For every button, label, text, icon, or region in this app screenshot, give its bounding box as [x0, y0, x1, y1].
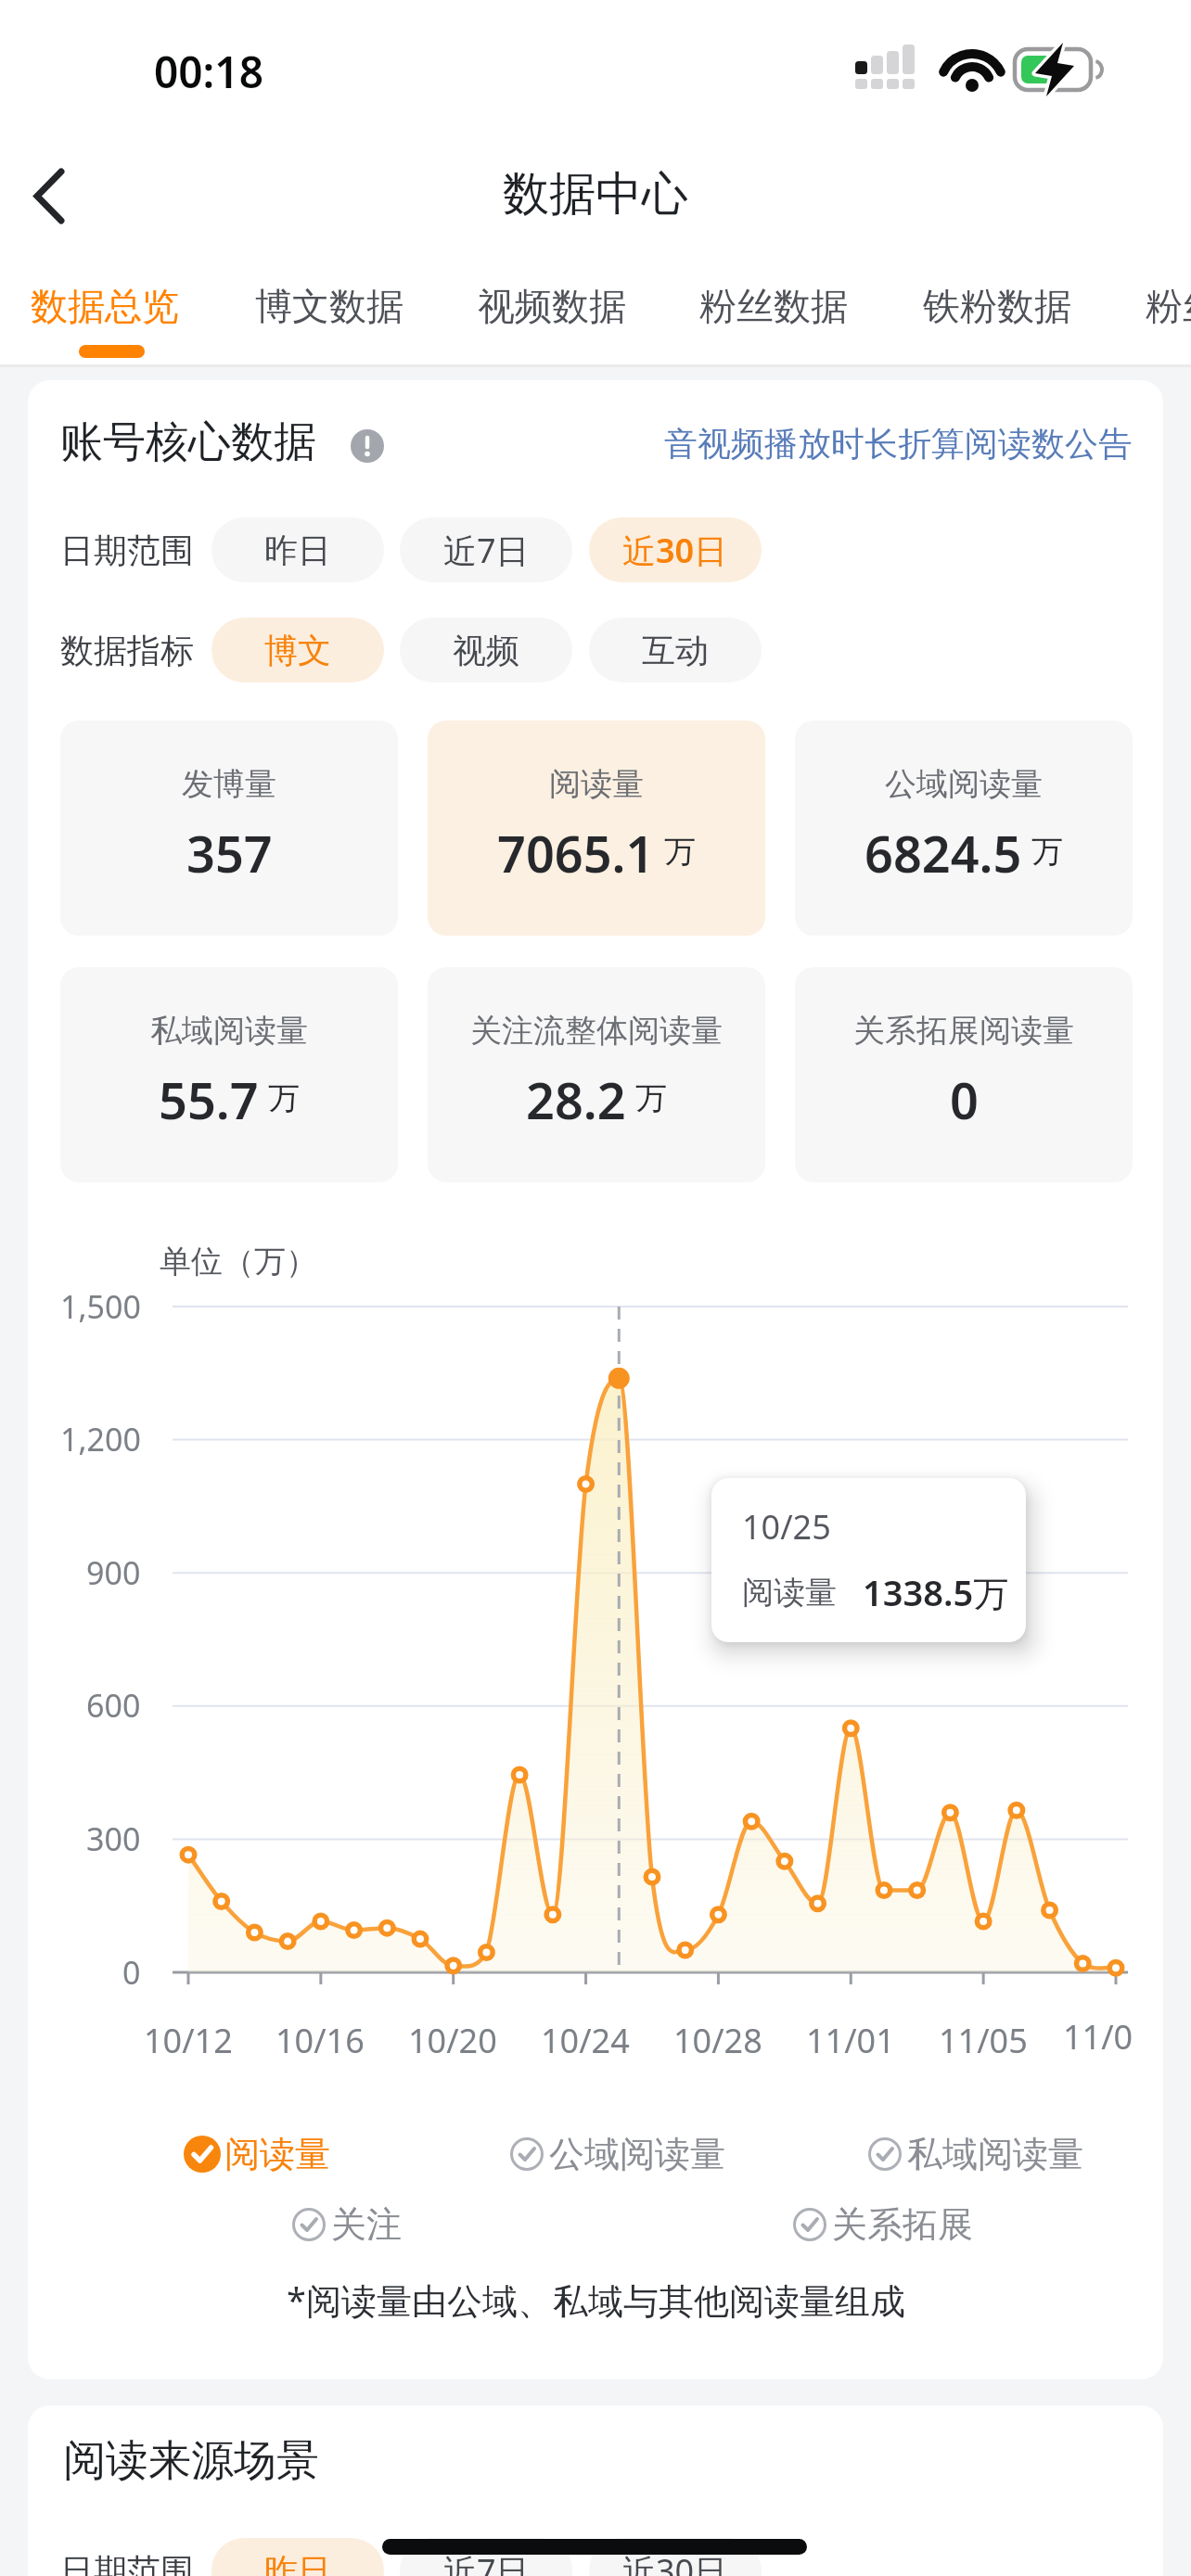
staticText: 10/24: [541, 2018, 630, 2063]
staticText: 1,500: [60, 1285, 141, 1328]
staticText: 10/28: [673, 2018, 762, 2063]
button[interactable]: 发博量: [60, 721, 398, 936]
staticText: 7065.1: [497, 819, 655, 884]
staticText: 357: [186, 819, 273, 884]
button[interactable]: 关注: [288, 2197, 402, 2252]
button[interactable]: 私域阅读量: [864, 2126, 1083, 2182]
staticText: 视频: [453, 630, 519, 671]
staticText: 数据总览: [31, 283, 179, 329]
staticText: 互动: [642, 630, 709, 671]
button[interactable]: 私域阅读量: [60, 967, 398, 1182]
staticText: 1,200: [60, 1418, 141, 1460]
staticText: 近30日: [622, 2548, 728, 2576]
staticText: 铁粉数据: [923, 283, 1071, 329]
button[interactable]: 关注流整体阅读量: [428, 967, 765, 1182]
staticText: 阅读量: [742, 1573, 837, 1613]
button[interactable]: 关系拓展: [789, 2197, 973, 2252]
staticText: 0: [122, 1951, 141, 1994]
staticText: 0: [950, 1065, 979, 1130]
staticText: 关系拓展阅读量: [853, 1011, 1074, 1051]
staticText: 关系拓展: [832, 2202, 973, 2247]
button[interactable]: 近7日: [400, 2538, 572, 2576]
button[interactable]: 阅读量: [182, 2126, 330, 2182]
button[interactable]: 博文: [211, 618, 384, 682]
button[interactable]: 粉丝数据: [699, 267, 848, 345]
button[interactable]: 近7日: [400, 517, 572, 582]
staticText: 日期范围: [60, 2550, 194, 2576]
button[interactable]: 近30日: [589, 2538, 762, 2576]
staticText: 28.2: [526, 1065, 626, 1130]
staticText: 900: [86, 1551, 141, 1594]
staticText: 万: [664, 832, 696, 872]
staticText: 公域阅读量: [885, 764, 1043, 804]
staticText: 1338.5万: [863, 1568, 1009, 1616]
button[interactable]: 阅读量: [428, 721, 765, 936]
staticText: 近30日: [622, 528, 728, 573]
staticText: 600: [86, 1684, 141, 1727]
staticText: 万: [1031, 832, 1063, 872]
staticText: 博文: [264, 630, 331, 671]
button[interactable]: 公域阅读量: [795, 721, 1133, 936]
staticText: 300: [86, 1817, 141, 1860]
staticText: 阅读量: [224, 2132, 330, 2176]
staticText: 昨日: [264, 2550, 331, 2576]
button[interactable]: 公域阅读量: [506, 2126, 725, 2182]
staticText: 阅读量: [549, 764, 644, 804]
staticText: 博文数据: [255, 283, 403, 329]
button[interactable]: 粉丝数据: [1146, 267, 1191, 345]
staticText: 10/25: [742, 1504, 831, 1549]
staticText: 6824.5: [864, 819, 1022, 884]
staticText: 近7日: [443, 2548, 530, 2576]
button[interactable]: 互动: [589, 618, 762, 682]
staticText: 阅读来源场景: [63, 2434, 319, 2488]
staticText: 日期范围: [60, 529, 194, 571]
staticText: 关注流整体阅读量: [470, 1011, 723, 1051]
button[interactable]: 博文数据: [255, 267, 403, 345]
staticText: 单位（万）: [160, 1242, 317, 1282]
staticText: 视频数据: [478, 283, 626, 329]
staticText: 公域阅读量: [549, 2132, 725, 2176]
button[interactable]: 视频: [400, 618, 572, 682]
staticText: 昨日: [264, 529, 331, 571]
button[interactable]: [19, 158, 83, 232]
staticText: 粉丝数据: [1146, 283, 1191, 329]
button[interactable]: 视频数据: [478, 267, 626, 345]
staticText: 账号核心数据: [60, 415, 316, 469]
staticText: 10/12: [144, 2018, 233, 2063]
staticText: 00:18: [154, 43, 263, 96]
staticText: 数据中心: [503, 165, 688, 223]
staticText: 私域阅读量: [907, 2132, 1083, 2176]
staticText: 11/09: [1063, 2014, 1141, 2066]
staticText: 发博量: [182, 764, 276, 804]
staticText: 私域阅读量: [150, 1011, 308, 1051]
staticText: 11/05: [939, 2018, 1028, 2063]
button[interactable]: 铁粉数据: [923, 267, 1071, 345]
staticText: 关注: [331, 2202, 402, 2247]
button[interactable]: 昨日: [211, 2538, 384, 2576]
staticText: 音视频播放时长折算阅读数公告: [664, 423, 1132, 465]
staticText: 10/16: [275, 2018, 365, 2063]
staticText: 万: [635, 1078, 667, 1118]
button[interactable]: 音视频播放时长折算阅读数公告: [631, 417, 1132, 469]
button[interactable]: 关系拓展阅读量: [795, 967, 1133, 1182]
staticText: 近7日: [443, 528, 530, 573]
staticText: 粉丝数据: [699, 283, 848, 329]
staticText: 55.7: [159, 1065, 259, 1130]
staticText: 11/01: [806, 2018, 895, 2063]
staticText: 10/20: [408, 2018, 497, 2063]
staticText: 万: [268, 1078, 300, 1118]
button[interactable]: 昨日: [211, 517, 384, 582]
staticText: 数据指标: [60, 630, 194, 671]
staticText: *阅读量由公域、私域与其他阅读量组成: [287, 2276, 905, 2324]
button[interactable]: 近30日: [589, 517, 762, 582]
button[interactable]: 数据总览: [31, 267, 179, 345]
